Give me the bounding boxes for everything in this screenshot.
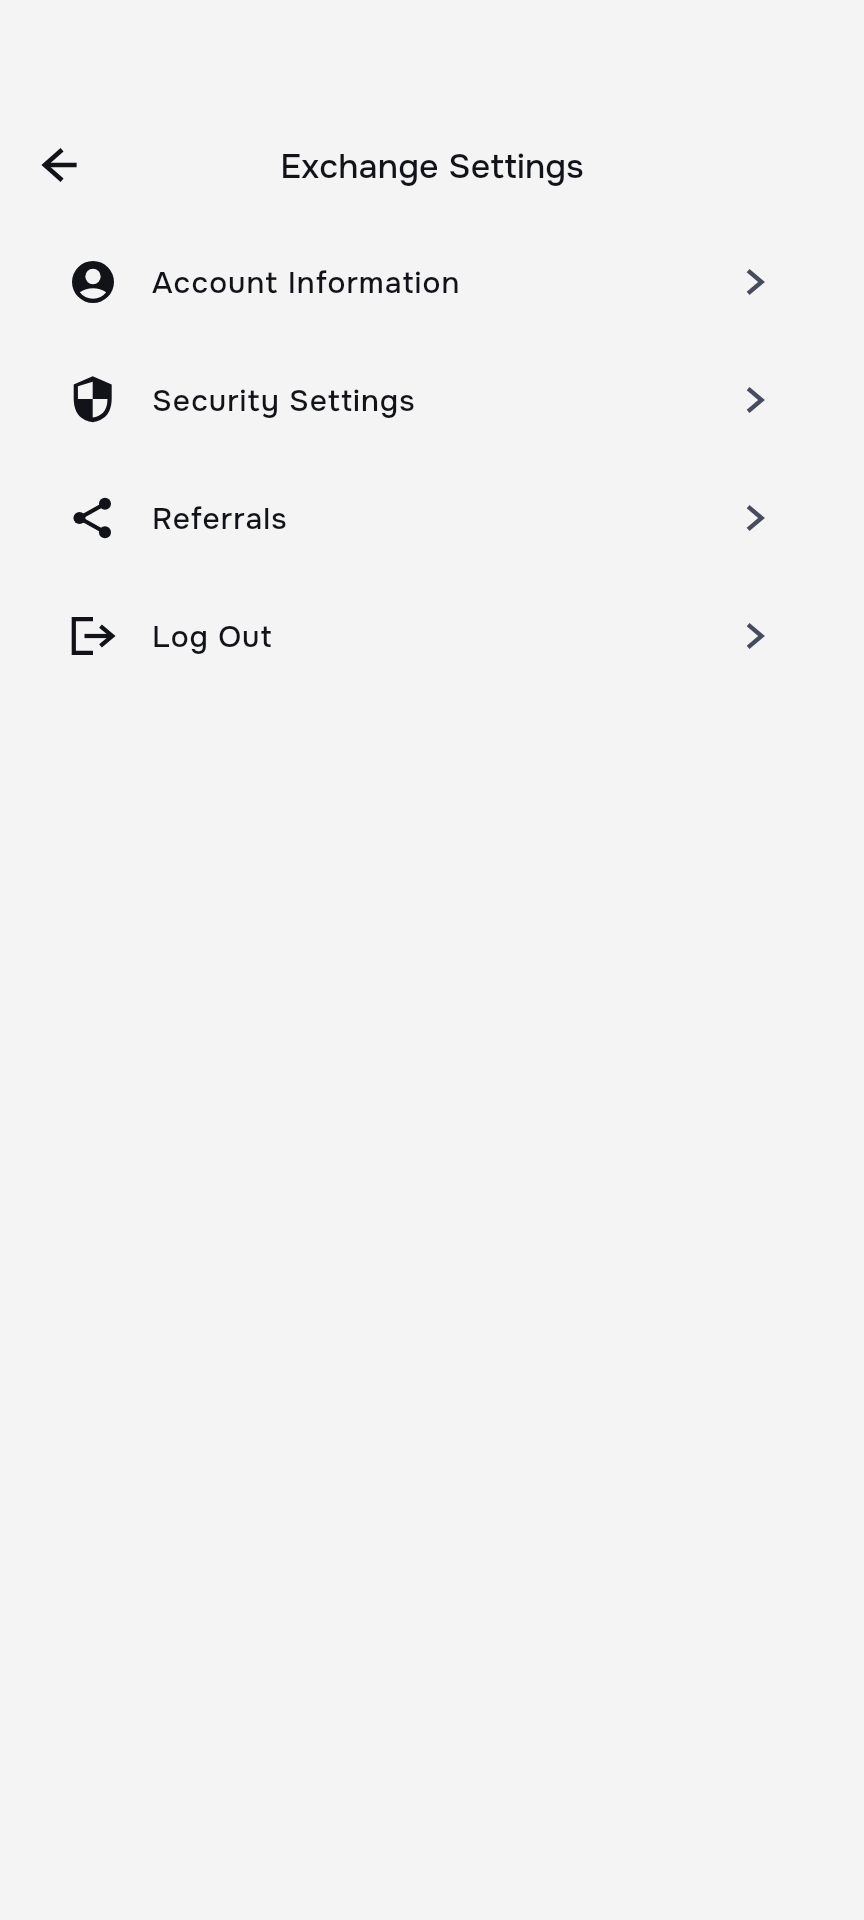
staticText: Security Settings [152, 382, 416, 420]
staticText: Exchange Settings [0, 145, 864, 188]
button[interactable]: Security Settings [0, 341, 864, 459]
button[interactable]: Back [30, 136, 87, 193]
staticText: Log Out [152, 618, 273, 656]
button[interactable]: Log Out [0, 577, 864, 695]
staticText: Account Information [152, 264, 461, 302]
staticText: Referrals [152, 500, 288, 538]
button[interactable]: Account Information [0, 223, 864, 341]
button[interactable]: Referrals [0, 459, 864, 577]
